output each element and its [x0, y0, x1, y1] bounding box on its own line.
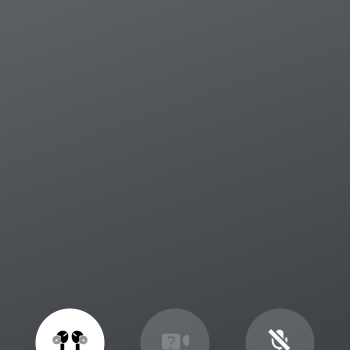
- button[interactable]: Turn camera off: [140, 308, 209, 350]
- button[interactable]: Unmute microphone: [245, 308, 314, 350]
- staticText: ?: [167, 330, 175, 350]
- button[interactable]: Audio output: [35, 308, 104, 350]
